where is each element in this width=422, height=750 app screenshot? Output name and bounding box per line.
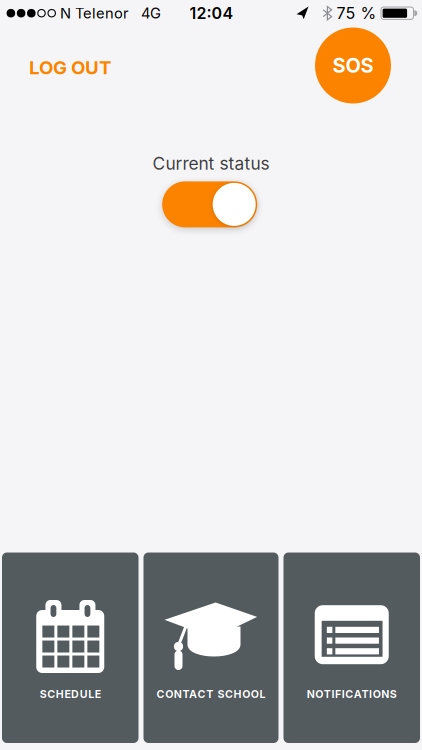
staticText: 4G [141, 4, 161, 22]
staticText: 75 % [336, 4, 376, 23]
button[interactable]: NOTIFICATIONS [283, 552, 420, 743]
staticText: CONTACT SCHOOL [157, 688, 265, 700]
button[interactable]: SCHEDULE [2, 552, 138, 743]
staticText: 12:04 [189, 4, 233, 23]
staticText: Current status [152, 153, 269, 174]
staticText: NOTIFICATIONS [307, 688, 397, 700]
staticText: SOS [332, 54, 373, 77]
staticText: LOG OUT [29, 56, 111, 78]
button[interactable]: CONTACT SCHOOL [143, 552, 278, 743]
button[interactable]: Current status [162, 181, 257, 227]
staticText: N Telenor [60, 4, 129, 22]
button[interactable]: LOG OUT [29, 56, 111, 78]
button[interactable]: SOS [315, 27, 391, 103]
staticText: SCHEDULE [40, 688, 101, 700]
